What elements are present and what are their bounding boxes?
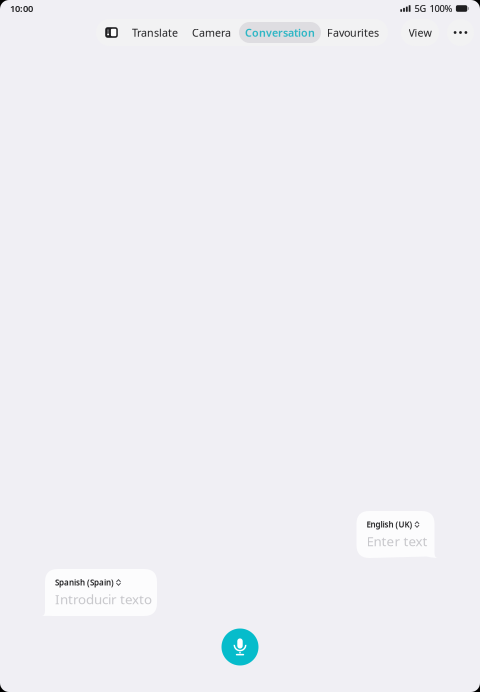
staticText: Favourites	[327, 25, 379, 40]
button[interactable]: Show sidebar	[97, 19, 126, 46]
staticText: 10:00	[10, 2, 33, 15]
staticText: 100%	[429, 2, 452, 15]
staticText: Spanish (Spain)	[55, 577, 114, 588]
staticText: Camera	[192, 25, 231, 40]
staticText: 5G	[414, 2, 426, 15]
button[interactable]: More options	[447, 19, 474, 46]
button[interactable]: View	[401, 19, 439, 46]
staticText: English (UK)	[366, 519, 412, 530]
button[interactable]: Favourites	[321, 22, 385, 43]
button[interactable]: Translate	[126, 22, 184, 43]
button[interactable]: Start conversation	[218, 628, 262, 666]
button[interactable]: Camera	[184, 22, 239, 43]
staticText: View	[408, 25, 431, 40]
button[interactable]: Conversation	[239, 22, 321, 43]
staticText: Enter text	[366, 532, 427, 550]
button[interactable]: Spanish (Spain)	[45, 569, 157, 616]
staticText: Conversation	[245, 25, 315, 40]
staticText: Introducir texto	[55, 590, 152, 608]
staticText: Translate	[132, 25, 178, 40]
button[interactable]: English (UK)	[356, 511, 434, 558]
